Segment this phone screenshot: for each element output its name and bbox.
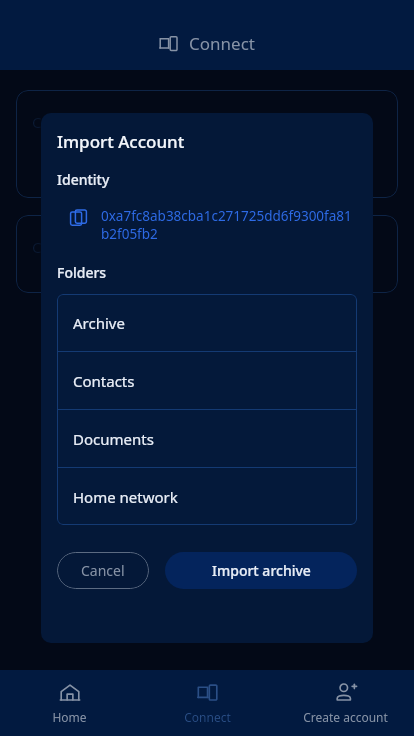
button[interactable]: 0xa7fc8ab38cba1c271725dd6f9300fa81b2f05f…: [69, 207, 357, 243]
staticText: Create a new account: [32, 237, 184, 257]
button[interactable]: Create a new account: [16, 215, 398, 293]
staticText: Import Account: [57, 130, 185, 153]
staticText: Cancel: [81, 561, 125, 580]
staticText: Identity: [57, 170, 110, 189]
staticText: Import archive: [212, 561, 311, 580]
staticText: Archive: [73, 313, 125, 333]
staticText: Home: [52, 709, 87, 725]
button[interactable]: Connect with devices on this network: [16, 90, 398, 198]
button[interactable]: Archive: [57, 294, 357, 351]
button[interactable]: Documents: [57, 410, 357, 467]
button[interactable]: Contacts: [57, 352, 357, 409]
staticText: Create account: [303, 709, 388, 725]
staticText: Connect with devices on this network: [32, 112, 295, 132]
staticText: Home network: [73, 487, 178, 507]
staticText: Connect: [189, 32, 255, 55]
button[interactable]: Home network: [57, 468, 357, 525]
staticText: 0xa7fc8ab38cba1c271725dd6f9300fa81b2f05f…: [101, 207, 357, 243]
button[interactable]: Create account: [276, 670, 414, 736]
staticText: Connect: [184, 709, 231, 725]
staticText: Documents: [73, 429, 154, 449]
staticText: Contacts: [73, 371, 135, 391]
button[interactable]: Connect: [138, 670, 276, 736]
button[interactable]: Home: [0, 670, 138, 736]
button[interactable]: Import archive: [165, 552, 357, 589]
button[interactable]: Cancel: [57, 552, 149, 589]
staticText: Folders: [57, 263, 107, 282]
